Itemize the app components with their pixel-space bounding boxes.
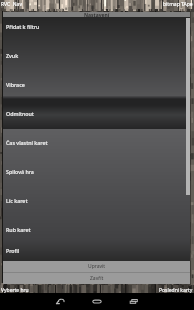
button[interactable]: Rub karet [3,215,190,244]
staticText: Odmítnout [6,110,34,117]
staticText: Spilová hra [6,168,34,175]
staticText: RVC Nav [1,1,22,8]
staticText: Přidat k filtru [6,23,40,30]
button[interactable]: Spilová hra [3,157,190,186]
staticText: Čas vlastní karet [6,139,48,146]
staticText: Zvuk [6,52,19,59]
button[interactable]: Odmítnout [3,99,190,128]
button[interactable]: Čas vlastní karet [3,128,190,157]
staticText: Zavřít [90,275,104,282]
staticText: Vyberte hru [1,287,29,294]
staticText: Vibrace [6,81,25,88]
staticText: Rub karet [6,226,31,233]
button[interactable]: Líc karet [3,186,190,215]
button[interactable]: Home [87,295,107,308]
staticText: bitmap TApe [163,1,193,8]
staticText: Upravit [88,263,106,270]
button[interactable]: Přidat k filtru [3,12,190,41]
button[interactable]: Profil [3,244,190,256]
button[interactable]: Vibrace [3,70,190,99]
button[interactable]: Recents [124,295,144,308]
button[interactable]: Back [50,295,70,308]
staticText: Líc karet [6,197,28,204]
button[interactable]: Upravit [3,261,190,272]
staticText: Posledni karty [159,287,193,294]
button[interactable]: Zvuk [3,41,190,70]
staticText: Nastavení [84,12,110,17]
staticText: Profil [6,247,20,254]
button[interactable]: Zavřít [3,273,190,284]
